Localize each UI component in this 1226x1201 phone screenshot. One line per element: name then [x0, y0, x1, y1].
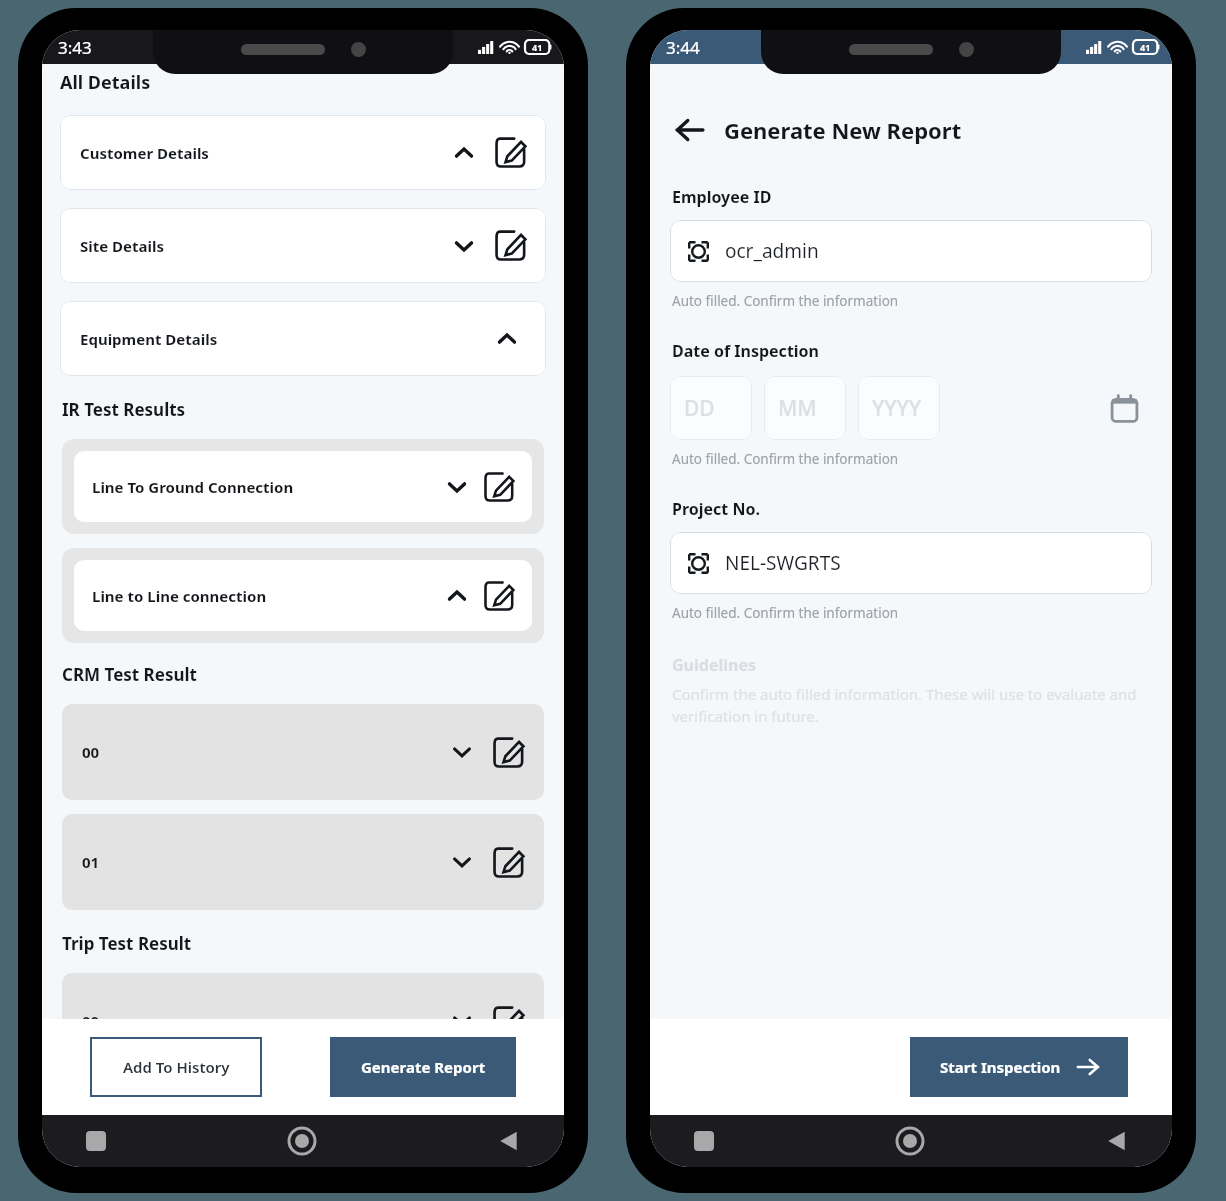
staticText: Trip Test Result	[62, 932, 192, 955]
button[interactable]: Generate Report	[330, 1037, 516, 1097]
staticText: 41	[1140, 41, 1151, 53]
staticText: 3:43	[58, 36, 92, 59]
other: Edit 00	[493, 737, 524, 768]
button[interactable]: 00	[62, 973, 544, 1069]
staticText: Auto filled. Confirm the information	[672, 450, 899, 468]
staticText: All Details	[60, 70, 151, 95]
button[interactable]: YYYY	[858, 376, 940, 440]
button[interactable]: 01	[62, 814, 544, 910]
button[interactable]: Pick date	[1102, 386, 1146, 430]
staticText: ocr_admin	[725, 238, 819, 264]
staticText: Auto filled. Confirm the information	[672, 292, 899, 310]
button[interactable]: Scan	[670, 220, 1152, 282]
staticText: Add To History	[123, 1057, 230, 1077]
other: Edit Line to Line connection	[484, 581, 514, 611]
staticText: Generate New Report	[724, 115, 962, 145]
staticText: Line to Line connection	[92, 586, 267, 606]
button[interactable]: Add To History	[90, 1037, 262, 1097]
staticText: 01	[82, 852, 100, 872]
button[interactable]: MM	[764, 376, 846, 440]
staticText: Employee ID	[672, 186, 772, 208]
other: Edit Line To Ground Connection	[484, 472, 514, 502]
staticText: NEL-SWGRTS	[725, 550, 841, 576]
other: Edit Site Details	[495, 230, 526, 261]
button[interactable]: Start Inspection	[910, 1037, 1128, 1097]
staticText: Date of Inspection	[672, 340, 820, 362]
staticText: MM	[778, 394, 817, 423]
button[interactable]: Line To Ground Connection	[74, 451, 532, 522]
button[interactable]: DD	[670, 376, 752, 440]
staticText: 41	[532, 41, 543, 53]
staticText: Customer Details	[80, 143, 209, 163]
staticText: IR Test Results	[62, 398, 186, 421]
button[interactable]: Site Details	[60, 208, 546, 283]
staticText: 3:44	[666, 36, 700, 59]
other: Edit 01	[493, 847, 524, 878]
button[interactable]: Back	[670, 110, 710, 150]
staticText: CRM Test Result	[62, 663, 197, 686]
other: Scan	[688, 241, 709, 262]
staticText: Generate Report	[361, 1057, 486, 1077]
staticText: Equipment Details	[80, 329, 218, 349]
button[interactable]: 00	[62, 704, 544, 800]
staticText: 00	[82, 742, 100, 762]
staticText: Line To Ground Connection	[92, 477, 294, 497]
other: Edit 00	[493, 1006, 524, 1037]
staticText: Confirm the auto filled information. The…	[672, 684, 1150, 727]
staticText: DD	[684, 394, 715, 423]
other: Edit Customer Details	[495, 137, 526, 168]
button[interactable]: Equipment Details	[60, 301, 546, 376]
other: Scan	[688, 553, 709, 574]
staticText: Site Details	[80, 236, 165, 256]
button[interactable]: Scan	[670, 532, 1152, 594]
staticText: Guidelines	[672, 654, 756, 676]
staticText: Auto filled. Confirm the information	[672, 604, 899, 622]
staticText: Project No.	[672, 498, 760, 520]
staticText: Start Inspection	[940, 1057, 1061, 1077]
button[interactable]: Customer Details	[60, 115, 546, 190]
button[interactable]: Line to Line connection	[74, 560, 532, 631]
staticText: 00	[82, 1011, 100, 1031]
staticText: YYYY	[872, 394, 922, 423]
